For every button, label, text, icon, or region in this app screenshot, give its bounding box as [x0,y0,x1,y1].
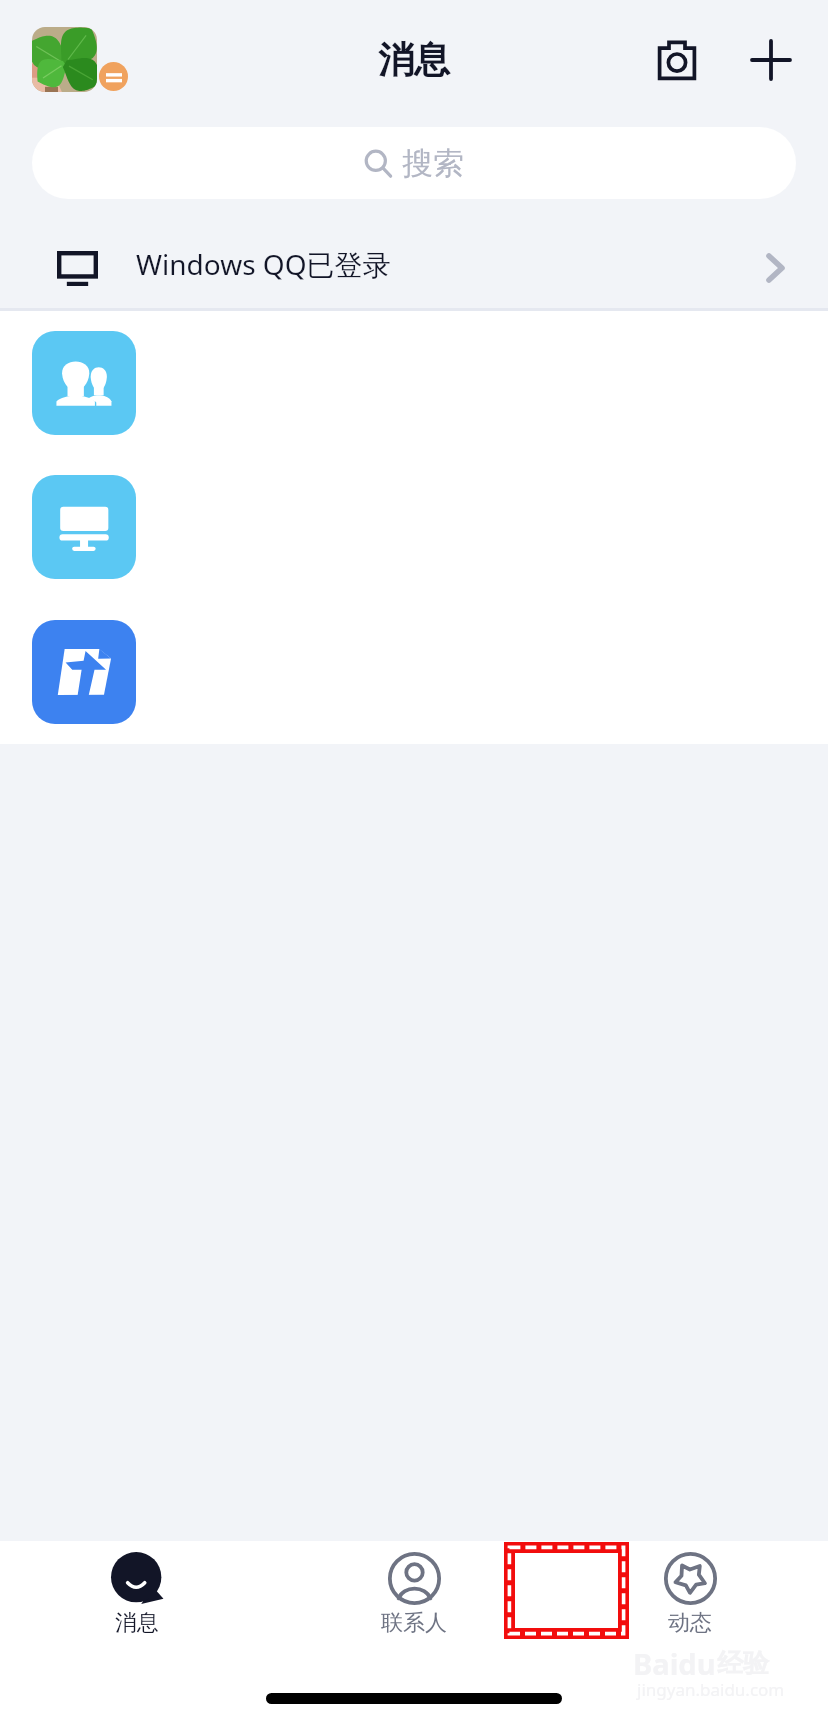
button[interactable]: Status menu [99,62,128,91]
staticText: 联系人 [381,1609,447,1637]
button[interactable]: 搜索 [32,127,796,199]
button[interactable]: 群聊 [0,311,828,455]
staticText: jingyan.baidu.com [637,1678,785,1701]
button[interactable]: Camera [641,24,713,96]
button[interactable]: 动态 [630,1552,750,1640]
staticText: Windows QQ已登录 [136,245,391,283]
staticText: 搜索 [402,144,464,183]
button[interactable]: 消息 [77,1552,197,1640]
staticText: 经验 [717,1647,769,1680]
button[interactable]: 我的电脑 [0,455,828,599]
button[interactable]: 文件传输助手 [0,600,828,744]
button[interactable]: Add [735,24,807,96]
staticText: Baidu [633,1644,716,1683]
staticText: 消息 [115,1609,159,1637]
button[interactable]: Windows QQ已登录 [0,215,828,311]
button[interactable]: 联系人 [354,1552,474,1640]
staticText: 消息 [378,37,450,82]
staticText: 动态 [668,1609,712,1637]
button[interactable]: Profile avatar [32,27,97,92]
